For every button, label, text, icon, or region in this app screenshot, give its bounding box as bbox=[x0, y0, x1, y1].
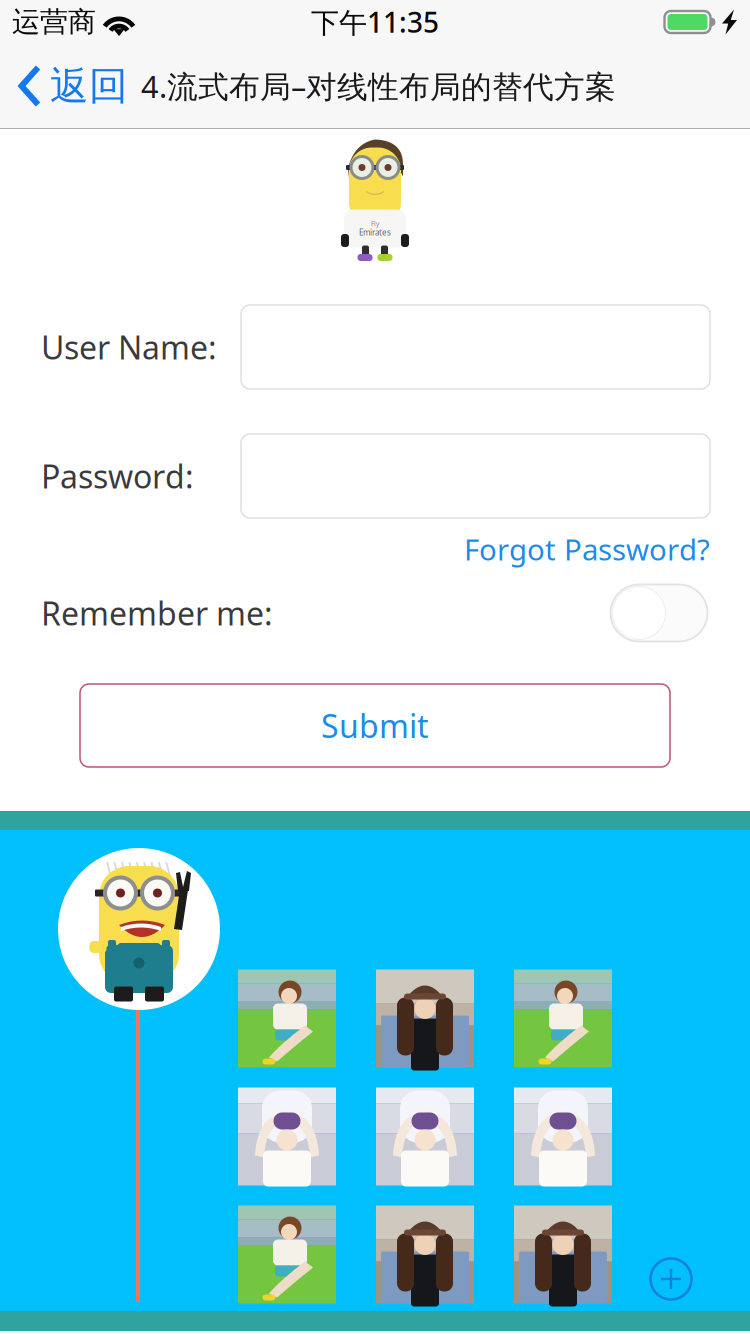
staticText: 返回 bbox=[50, 62, 128, 110]
button[interactable]: Photo 4 bbox=[238, 1087, 336, 1185]
button[interactable]: 返回 bbox=[0, 44, 138, 128]
button[interactable]: Photo 1 bbox=[238, 969, 336, 1067]
staticText: Forgot Password? bbox=[464, 529, 710, 568]
button[interactable]: Photo 7 bbox=[238, 1205, 336, 1303]
staticText: Submit bbox=[321, 704, 429, 747]
button[interactable]: Photo 2 bbox=[376, 969, 474, 1067]
staticText: Remember me: bbox=[41, 592, 273, 634]
button[interactable]: Photo 5 bbox=[376, 1087, 474, 1185]
button[interactable]: Submit bbox=[80, 684, 670, 767]
staticText: Password: bbox=[41, 455, 194, 497]
staticText: 下午11:35 bbox=[311, 3, 439, 41]
button[interactable]: Photo 9 bbox=[514, 1205, 612, 1303]
button[interactable]: Photo 6 bbox=[514, 1087, 612, 1185]
staticText: Fly bbox=[371, 219, 379, 228]
button[interactable]: Remember me toggle bbox=[610, 584, 708, 642]
staticText: 4.流式布局–对线性布局的替代方案 bbox=[141, 66, 616, 106]
button[interactable]: Photo 8 bbox=[376, 1205, 474, 1303]
staticText: User Name: bbox=[41, 326, 217, 368]
button[interactable]: Forgot Password? bbox=[464, 531, 710, 567]
button[interactable]: Photo 3 bbox=[514, 969, 612, 1067]
staticText: Emirates bbox=[359, 227, 391, 238]
staticText: 运营商 bbox=[12, 5, 96, 39]
button[interactable]: Add photo bbox=[645, 1253, 697, 1305]
